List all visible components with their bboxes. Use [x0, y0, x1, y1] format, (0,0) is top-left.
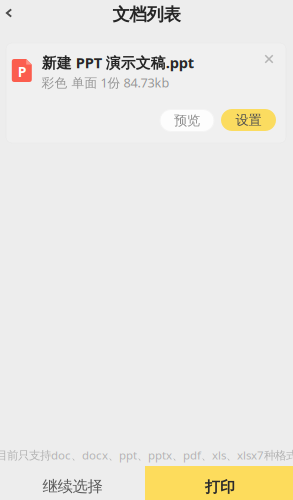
- staticText: 打印: [205, 478, 235, 496]
- staticText: 继续选择: [42, 477, 102, 496]
- staticText: 设置: [235, 112, 261, 128]
- button[interactable]: 打印: [145, 466, 293, 500]
- staticText: 文档列表: [112, 4, 180, 25]
- staticText: 目前只支持doc、docx、ppt、pptx、pdf、xls、xlsx7种格式: [0, 447, 293, 463]
- button[interactable]: 继续选择: [0, 466, 145, 500]
- button[interactable]: Remove document: [257, 47, 281, 71]
- staticText: 预览: [174, 112, 200, 129]
- staticText: 彩色 单面 1份 84.73kb: [42, 74, 170, 91]
- staticText: 新建 PPT 演示文稿.ppt: [42, 52, 194, 72]
- button[interactable]: 预览: [160, 109, 214, 131]
- button[interactable]: Back: [0, 0, 21, 26]
- button[interactable]: 设置: [221, 109, 276, 131]
- staticText: P: [18, 62, 27, 81]
